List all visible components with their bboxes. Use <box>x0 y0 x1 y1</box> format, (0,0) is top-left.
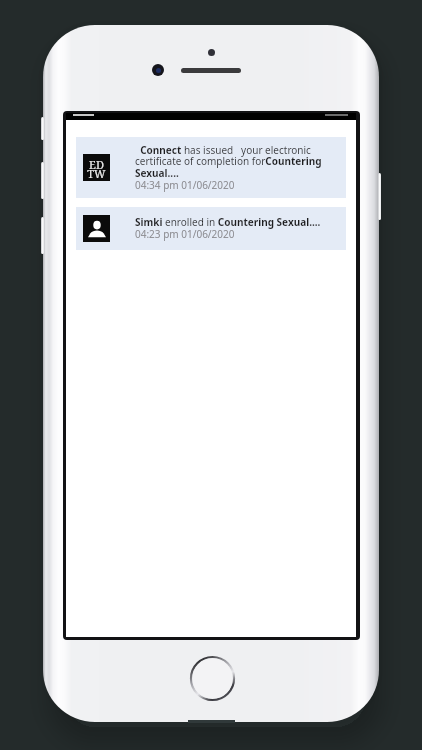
staticText: 04:23 pm 01/06/2020 <box>135 227 235 241</box>
other: User avatar <box>83 215 110 242</box>
staticText: Simki enrolled in Countering Sexual.... <box>135 215 321 229</box>
staticText: ED <box>89 157 104 172</box>
button[interactable]: Organisation logo <box>76 137 346 198</box>
staticText: TW <box>87 166 106 181</box>
button[interactable]: User avatar <box>76 207 346 250</box>
staticText: Connect has issued your electronic certi… <box>135 143 340 180</box>
staticText: 04:34 pm 01/06/2020 <box>135 178 235 192</box>
other: Organisation logo <box>83 154 110 181</box>
button[interactable]: Home <box>190 656 235 701</box>
